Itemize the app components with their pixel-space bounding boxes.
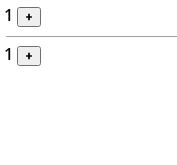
staticText: 1 (4, 4, 14, 26)
staticText: 1 (4, 43, 14, 65)
button[interactable]: Add one (17, 7, 41, 27)
button[interactable]: Add one (17, 46, 41, 66)
